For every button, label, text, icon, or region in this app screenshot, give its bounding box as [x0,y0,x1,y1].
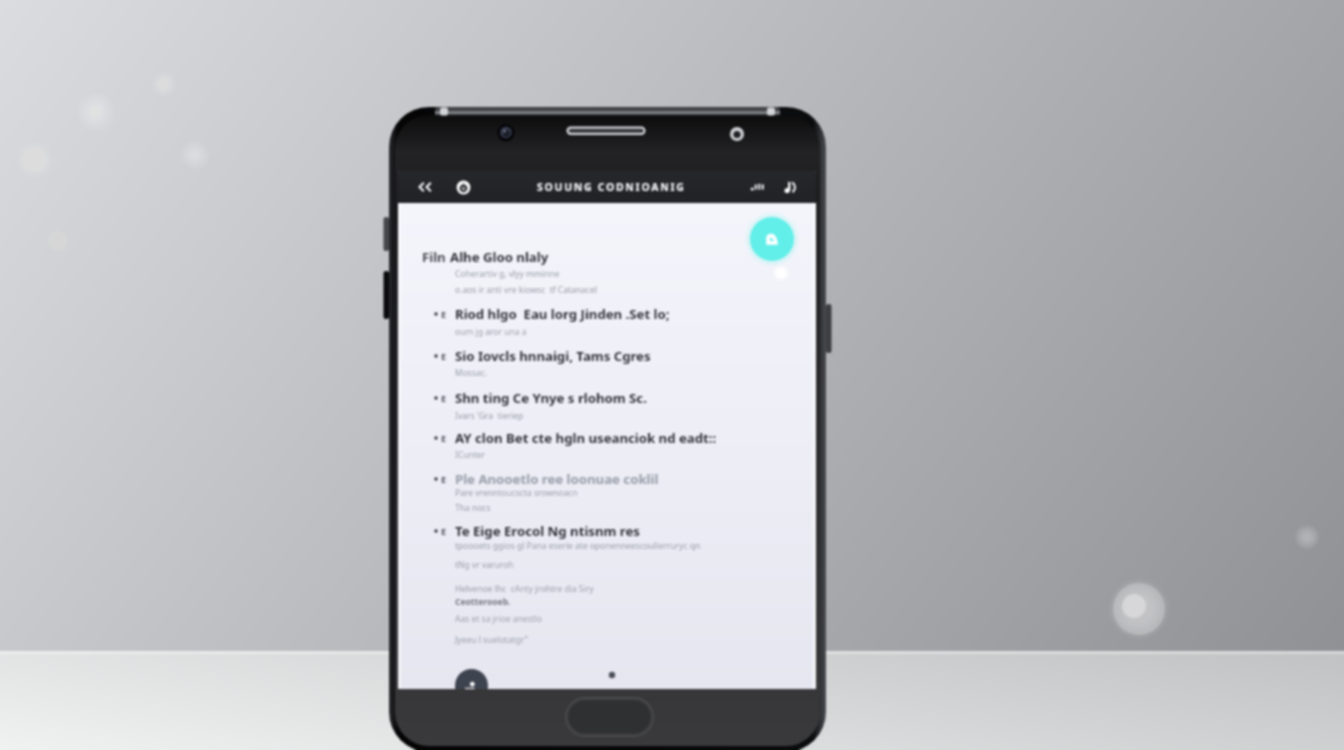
staticText: AY clon Bet cte hgln useanciok nd eadt:: [455,429,717,447]
staticText: Alhe Gloo nlaly [450,248,549,266]
staticText: Aas et sa jrioe anestlo [455,613,542,625]
button[interactable]: Add [750,217,794,261]
staticText: Jyeeu l suelotatgr" [455,634,529,646]
staticText: oum jg aror una a [455,326,527,338]
staticText: SOUUNG CODNIOANIG [537,180,686,194]
staticText: Filn [422,248,450,266]
button[interactable]: Back [412,175,436,199]
button[interactable]: E [434,389,647,407]
staticText: tNg vr varuroh [455,559,514,571]
staticText: Riod hlgo Eau lorg Jinden .Set lo; [455,305,670,323]
button[interactable]: Sound [778,175,802,199]
staticText: Tha nocs [455,502,491,514]
button[interactable]: E [434,305,670,323]
staticText: E [441,350,447,362]
staticText: Pare vrenntoucscta srownoacn [455,487,578,499]
button[interactable]: E [434,470,659,488]
staticText: Shn ting Ce Ynye s rlohom Sc. [455,389,647,407]
staticText: Sio Iovcls hnnaigi, Tams Cgres [455,347,651,365]
button[interactable]: E [434,522,640,540]
staticText: E [441,432,447,444]
button[interactable]: Menu [455,669,488,689]
button[interactable]: Filn [422,248,549,266]
staticText: Helvenoe lhc cAnty jrohtre dia Siry [455,583,594,595]
staticText: Coherartiv g, vlyy mminne [455,268,560,280]
staticText: E [441,525,447,537]
button[interactable]: Power [451,175,475,199]
staticText: ICunter [455,449,486,461]
staticText: Ivars 'Gra tieriep [455,410,524,422]
staticText: E [441,473,447,485]
staticText: E [441,392,447,404]
staticText: Te Eige Erocol Ng ntisnm res [455,522,640,540]
staticText: tpoooets ggios gl Pana eserie ate oponen… [455,540,701,552]
button[interactable]: E [434,429,717,447]
staticText: Ple Anooetlo ree loonuae coklil [455,470,659,488]
staticText: o.aos ir anti vre kiowsc tf Catanacel [455,284,597,296]
button[interactable]: Signal strength [747,175,771,199]
staticText: Ceotterooeb. [455,596,511,608]
button[interactable]: E [434,347,651,365]
staticText: Mossac. [455,367,488,379]
staticText: E [441,308,447,320]
